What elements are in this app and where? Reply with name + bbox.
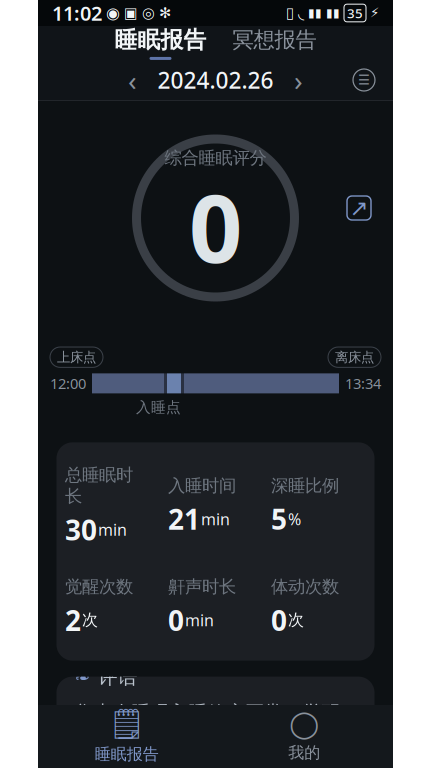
button[interactable]: ◯ [215,708,393,762]
staticText: ‹ [128,61,137,99]
staticText: 我的 [288,743,320,762]
staticText: ◯ [289,708,319,739]
staticText: 鼾声时长 [168,576,236,597]
button[interactable]: 🗒 [38,707,215,764]
staticText: ▣ [124,5,138,21]
staticText: ⚡︎ [370,5,379,20]
button[interactable]: 睡眠报告 [114,26,206,60]
staticText: 13:34 [345,374,381,393]
staticText: ▯ [286,5,294,21]
staticText: 总睡眠时长 [65,464,133,507]
staticText: 综合睡眠评分 [164,147,266,169]
staticText: ❧ [74,666,90,687]
staticText: 上床点 [57,349,96,365]
staticText: ◎ [142,5,155,21]
staticText: ◟ [298,4,304,22]
button[interactable]: Share [347,196,371,220]
staticText: 您本次睡眠入睡效率正常、觉醒较少、体位安稳、无明显睡眠问题，但是存在总时长不足、… [74,701,340,768]
button[interactable]: 冥想报告 [232,27,316,59]
staticText: ▮▮ [326,6,340,20]
staticText: min [98,519,127,540]
staticText: 体动次数 [271,576,339,597]
staticText: 35 [347,4,363,22]
staticText: 入睡点 [136,398,181,416]
staticText: 0 [271,601,287,639]
staticText: ☰ [358,72,370,87]
staticText: 离床点 [335,349,374,365]
staticText: 睡眠报告 [114,26,206,54]
staticText: 30 [65,511,97,548]
staticText: 11:02 [52,0,102,26]
staticText: 12:00 [50,374,86,393]
staticText: 入睡时间 [168,475,236,496]
staticText: 次 [288,610,304,630]
button[interactable]: Previous day [121,67,143,93]
staticText: min [185,609,214,631]
staticText: ◉ [106,4,120,22]
staticText: 2 [65,601,81,639]
staticText: ↗ [349,195,368,221]
staticText: ▮▮ [308,6,322,20]
staticText: 0 [189,165,242,289]
button[interactable]: Next day [287,67,309,93]
staticText: 评语 [97,664,137,689]
staticText: 21 [168,500,200,537]
staticText: 睡眠报告 [95,744,159,764]
staticText: 次 [82,610,98,630]
staticText: › [294,61,303,99]
staticText: % [288,508,301,529]
staticText: 0 [168,601,184,639]
staticText: 2024.02.26 [157,65,273,95]
staticText: 5 [271,500,287,537]
staticText: 冥想报告 [232,27,316,53]
staticText: 🗒 [108,707,145,740]
staticText: 深睡比例 [271,475,339,496]
staticText: 觉醒次数 [65,576,133,597]
staticText: min [201,508,230,529]
staticText: ✻ [159,5,171,21]
button[interactable]: Report settings [353,69,375,91]
